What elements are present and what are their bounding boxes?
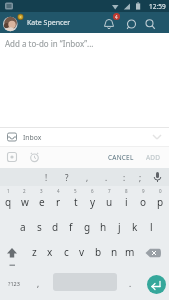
button[interactable]: ,: [79, 168, 95, 186]
staticText: 12:59: [149, 2, 166, 11]
button[interactable]: 1: [0, 186, 16, 213]
button[interactable]: Kate Spencer: [27, 18, 71, 28]
staticText: h: [100, 220, 107, 234]
staticText: y: [90, 195, 96, 209]
staticText: j: [118, 220, 121, 234]
staticText: 6: [91, 188, 94, 194]
staticText: f: [69, 220, 73, 234]
button[interactable]: m: [122, 240, 138, 266]
staticText: z: [32, 245, 37, 259]
button[interactable]: 4: [50, 186, 67, 213]
staticText: ?: [65, 172, 69, 183]
staticText: t: [74, 195, 78, 209]
staticText: w: [21, 195, 29, 209]
staticText: r: [56, 195, 61, 209]
staticText: c: [64, 245, 69, 259]
button[interactable]: 5: [67, 186, 84, 213]
button[interactable]: k: [127, 213, 143, 240]
staticText: o: [140, 195, 147, 209]
staticText: l: [150, 220, 153, 234]
staticText: 0: [159, 188, 162, 194]
button[interactable]: l: [143, 213, 159, 240]
button[interactable]: 7: [101, 186, 118, 213]
staticText: p: [157, 195, 164, 209]
button[interactable]: [7, 152, 18, 163]
staticText: 4: [57, 188, 60, 194]
staticText: 8: [125, 188, 128, 194]
staticText: Add a to-do in “Inbox”...: [5, 38, 94, 49]
button[interactable]: Inbox: [0, 128, 169, 146]
button[interactable]: 8: [118, 186, 135, 213]
staticText: d: [52, 220, 59, 234]
button[interactable]: [102, 16, 117, 31]
button[interactable]: :: [116, 168, 132, 186]
staticText: 2: [23, 188, 26, 194]
staticText: CANCEL: [108, 153, 134, 162]
button[interactable]: c: [58, 240, 74, 266]
staticText: 4: [115, 14, 118, 20]
staticText: ADD: [146, 153, 161, 162]
staticText: n: [111, 245, 118, 259]
button[interactable]: .: [122, 266, 138, 300]
staticText: g: [84, 220, 91, 234]
button[interactable]: f: [63, 213, 79, 240]
staticText: x: [47, 245, 53, 259]
staticText: e: [39, 195, 45, 209]
button[interactable]: ;: [132, 168, 148, 186]
staticText: 5: [74, 188, 77, 194]
button[interactable]: g: [79, 213, 95, 240]
button[interactable]: s: [31, 213, 47, 240]
staticText: 1: [7, 188, 10, 194]
staticText: ,: [37, 278, 40, 289]
button[interactable]: 6: [84, 186, 101, 213]
button[interactable]: ,: [30, 266, 46, 300]
staticText: ,: [86, 172, 89, 183]
button[interactable]: 0: [152, 186, 169, 213]
button[interactable]: a: [15, 213, 31, 240]
staticText: k: [132, 220, 138, 234]
button[interactable]: v: [74, 240, 90, 266]
button[interactable]: [150, 170, 165, 185]
staticText: ;: [139, 172, 142, 183]
staticText: u: [106, 195, 113, 209]
button[interactable]: [139, 240, 169, 266]
button[interactable]: b: [90, 240, 106, 266]
button[interactable]: [29, 152, 40, 163]
button[interactable]: [143, 16, 158, 31]
staticText: ?123: [8, 280, 20, 287]
staticText: 9: [142, 188, 145, 194]
button[interactable]: 3: [33, 186, 50, 213]
staticText: 3: [40, 188, 43, 194]
button[interactable]: !: [38, 168, 54, 186]
staticText: 7: [108, 188, 111, 194]
button[interactable]: j: [111, 213, 127, 240]
button[interactable]: h: [95, 213, 111, 240]
button[interactable]: ?123: [0, 266, 28, 300]
staticText: q: [5, 195, 12, 209]
button[interactable]: CANCEL: [108, 147, 134, 168]
button[interactable]: 2: [16, 186, 33, 213]
button[interactable]: n: [106, 240, 122, 266]
button[interactable]: ?: [59, 168, 75, 186]
button[interactable]: x: [42, 240, 58, 266]
staticText: a: [20, 220, 26, 234]
button[interactable]: [0, 240, 24, 266]
button[interactable]: [124, 16, 139, 31]
button[interactable]: z: [26, 240, 42, 266]
staticText: !: [45, 172, 48, 183]
button[interactable]: d: [47, 213, 63, 240]
staticText: :: [123, 172, 126, 183]
button[interactable]: ADD: [146, 147, 161, 168]
staticText: b: [95, 245, 102, 259]
staticText: .: [129, 278, 132, 289]
button[interactable]: 9: [135, 186, 152, 213]
staticText: v: [79, 245, 85, 259]
staticText: m: [125, 245, 135, 259]
staticText: i: [125, 195, 128, 209]
staticText: Inbox: [23, 133, 42, 142]
staticText: s: [37, 220, 42, 234]
button[interactable]: .: [98, 168, 114, 186]
staticText: Kate Spencer: [27, 18, 71, 28]
button[interactable]: [147, 275, 166, 294]
